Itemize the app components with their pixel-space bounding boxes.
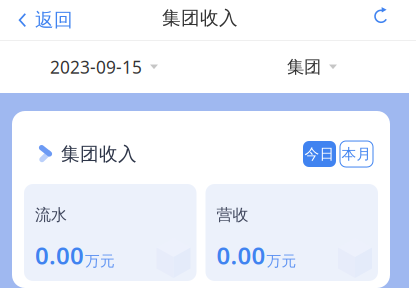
staticText: 返回 [35, 8, 73, 31]
staticText: 集团 [287, 56, 321, 78]
button[interactable]: 本月 [340, 141, 373, 167]
button[interactable]: 刷新 [358, 0, 416, 40]
staticText: 流水 [35, 205, 67, 225]
staticText: 集团收入 [162, 6, 238, 29]
button[interactable]: 今日 [303, 141, 336, 167]
staticText: 万元 [85, 252, 115, 270]
staticText: 2023-09-15 [50, 55, 142, 78]
staticText: 集团收入 [61, 142, 137, 165]
button[interactable]: 集团 [208, 41, 416, 93]
staticText: 今日 [304, 145, 334, 163]
button[interactable]: 返回 [0, 0, 87, 40]
staticText: 营收 [216, 205, 248, 225]
staticText: 万元 [266, 252, 296, 270]
button[interactable]: 2023-09-15 [0, 41, 208, 93]
staticText: 0.00 [216, 239, 265, 271]
staticText: 本月 [341, 145, 371, 163]
staticText: 0.00 [35, 239, 84, 271]
